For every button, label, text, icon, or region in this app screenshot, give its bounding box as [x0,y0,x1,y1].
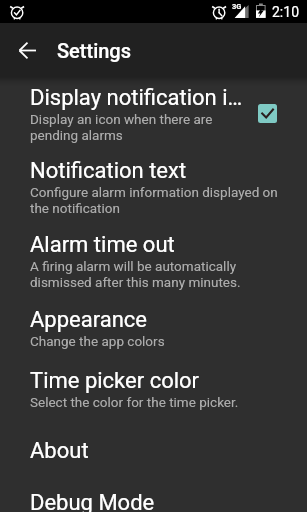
button[interactable]: Appearance [0,299,307,360]
staticText: Alarm time out [30,232,175,258]
button[interactable]: Time picker color [0,360,307,430]
button[interactable]: Back [5,28,49,72]
button[interactable]: Debug Mode [0,482,307,512]
staticText: Appearance [30,307,148,333]
button[interactable]: Display notification ic.. [0,77,307,150]
staticText: 3G [232,2,242,11]
staticText: Settings [57,39,132,62]
staticText: dismissed after this many minutes. [30,274,241,290]
staticText: Notification text [30,158,187,184]
staticText: the notification [30,200,120,216]
staticText: Time picker color [30,368,200,394]
button[interactable]: Notification text [0,150,307,224]
button[interactable]: Display notification icon checkbox [258,104,277,123]
staticText: Display an icon when there are [30,111,213,127]
staticText: Select the color for the time picker. [30,394,239,410]
staticText: Debug Mode [30,490,155,512]
staticText: Configure alarm information displayed on [30,184,278,200]
staticText: Display notification ic.. [30,85,250,111]
button[interactable]: About [0,430,307,482]
staticText: 2:10 [272,4,299,20]
staticText: A firing alarm will be automatically [30,258,237,274]
staticText: pending alarms [30,127,123,143]
staticText: Change the app colors [30,333,165,349]
button[interactable]: Alarm time out [0,224,307,299]
staticText: About [30,438,89,464]
